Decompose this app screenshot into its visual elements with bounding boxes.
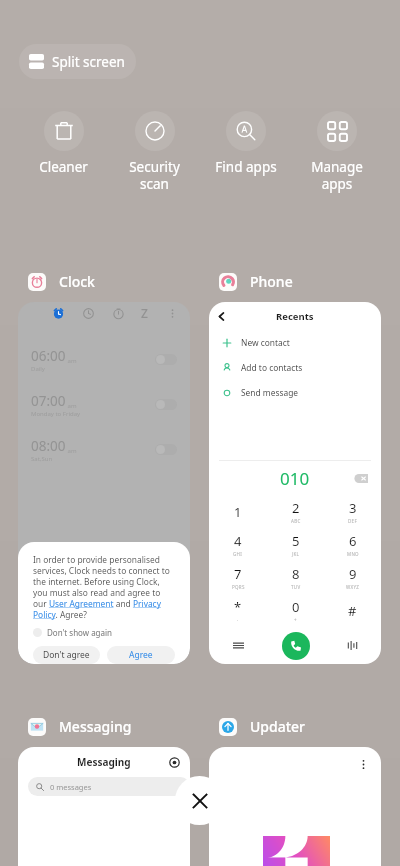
button[interactable]: 4 [209, 528, 267, 561]
staticText: JKL [292, 551, 300, 557]
staticText: am [66, 402, 77, 410]
staticText: 010 [280, 467, 310, 490]
staticText: In order to provide personalised service… [33, 554, 175, 620]
staticText: 8 [292, 565, 300, 583]
staticText: Split screen [52, 53, 125, 71]
staticText: 4 [234, 532, 242, 550]
staticText: Manage apps [311, 158, 363, 193]
button[interactable]: 8 [267, 561, 324, 594]
staticText: · [237, 617, 239, 623]
staticText: 1 [234, 503, 242, 521]
button[interactable]: Alarm toggle [155, 399, 177, 410]
staticText: Sat,Sun [31, 455, 53, 463]
staticText: 07:00 [31, 392, 66, 410]
staticText: am [66, 447, 77, 455]
staticText: GHI [233, 551, 243, 557]
staticText: Don't agree [43, 649, 90, 661]
button[interactable]: More options [358, 759, 369, 770]
button[interactable]: 1 [209, 495, 267, 528]
button[interactable]: 5 [267, 528, 324, 561]
staticText: TUV [291, 584, 301, 590]
staticText: Security scan [129, 158, 180, 193]
staticText: 3 [349, 499, 357, 517]
button[interactable]: * [209, 594, 267, 627]
staticText: Clock [59, 272, 95, 291]
staticText: Cleaner [39, 158, 88, 176]
staticText: 9 [349, 565, 357, 583]
button[interactable]: Delete [355, 474, 368, 483]
staticText: Recents [276, 310, 314, 323]
button[interactable]: 9 [324, 561, 381, 594]
staticText: Z [141, 305, 148, 321]
button[interactable]: Alarm toggle [155, 354, 177, 365]
button[interactable]: Messaging [18, 747, 190, 866]
staticText: am [66, 357, 77, 365]
button[interactable]: 0 [267, 594, 324, 627]
staticText: Don't show again [47, 627, 113, 638]
button[interactable]: New contact [209, 330, 381, 355]
staticText: 5 [292, 532, 300, 550]
button[interactable]: Find apps [200, 111, 291, 176]
staticText: Daily [31, 365, 45, 373]
staticText: Updater [250, 717, 306, 736]
button[interactable]: Security scan [109, 111, 200, 193]
button[interactable]: Close all [175, 776, 224, 825]
staticText: ABC [291, 518, 301, 524]
staticText: Agree [129, 649, 153, 661]
staticText: Messaging [77, 755, 131, 769]
button[interactable]: 2 [267, 495, 324, 528]
button[interactable]: 3 [324, 495, 381, 528]
staticText: * [234, 598, 242, 616]
staticText: Add to contacts [241, 362, 303, 373]
button[interactable]: Don't agree [33, 646, 100, 664]
staticText: 7 [234, 565, 242, 583]
button[interactable]: Agree [107, 646, 175, 664]
staticText: 0 messages [50, 782, 92, 792]
button[interactable]: # [324, 594, 381, 627]
staticText: Messaging [59, 717, 132, 736]
staticText: Monday to Friday [31, 410, 81, 418]
staticText: 08:00 [31, 437, 66, 455]
staticText: DEF [348, 518, 358, 524]
staticText: Send message [241, 387, 299, 398]
button[interactable]: Cleaner [18, 111, 109, 176]
staticText: 06:00 [31, 347, 66, 365]
button[interactable]: Back [209, 302, 381, 664]
staticText: # [348, 602, 357, 620]
staticText: 6 [349, 532, 357, 550]
button[interactable]: Z [18, 302, 190, 664]
button[interactable]: Settings [169, 757, 180, 768]
staticText: + [294, 617, 297, 623]
staticText: New contact [241, 337, 290, 348]
button[interactable]: Add to contacts [209, 355, 381, 380]
staticText: PQRS [232, 584, 245, 590]
button[interactable]: More options [209, 747, 381, 866]
button[interactable]: Messaging [28, 717, 132, 736]
staticText: Phone [250, 272, 293, 291]
button[interactable]: Split screen [19, 44, 136, 79]
button[interactable]: Phone [219, 272, 293, 291]
staticText: 2 [292, 499, 300, 517]
button[interactable]: 0 messages [28, 777, 190, 796]
staticText: Find apps [215, 158, 277, 176]
staticText: 0 [292, 598, 300, 616]
staticText: MNO [347, 551, 359, 557]
button[interactable]: 6 [324, 528, 381, 561]
button[interactable]: Updater [219, 717, 306, 736]
staticText: WXYZ [346, 584, 360, 590]
button[interactable]: Clock [28, 272, 95, 291]
button[interactable]: Manage apps [291, 111, 382, 193]
button[interactable]: Call log [209, 627, 267, 664]
button[interactable]: Send message [209, 380, 381, 405]
button[interactable]: Alarm toggle [155, 444, 177, 455]
button[interactable]: Don't show again [33, 627, 113, 638]
button[interactable]: Back [209, 304, 233, 328]
button[interactable]: Call [282, 632, 310, 660]
button[interactable]: 7 [209, 561, 267, 594]
button[interactable]: Dialpad [324, 627, 381, 664]
